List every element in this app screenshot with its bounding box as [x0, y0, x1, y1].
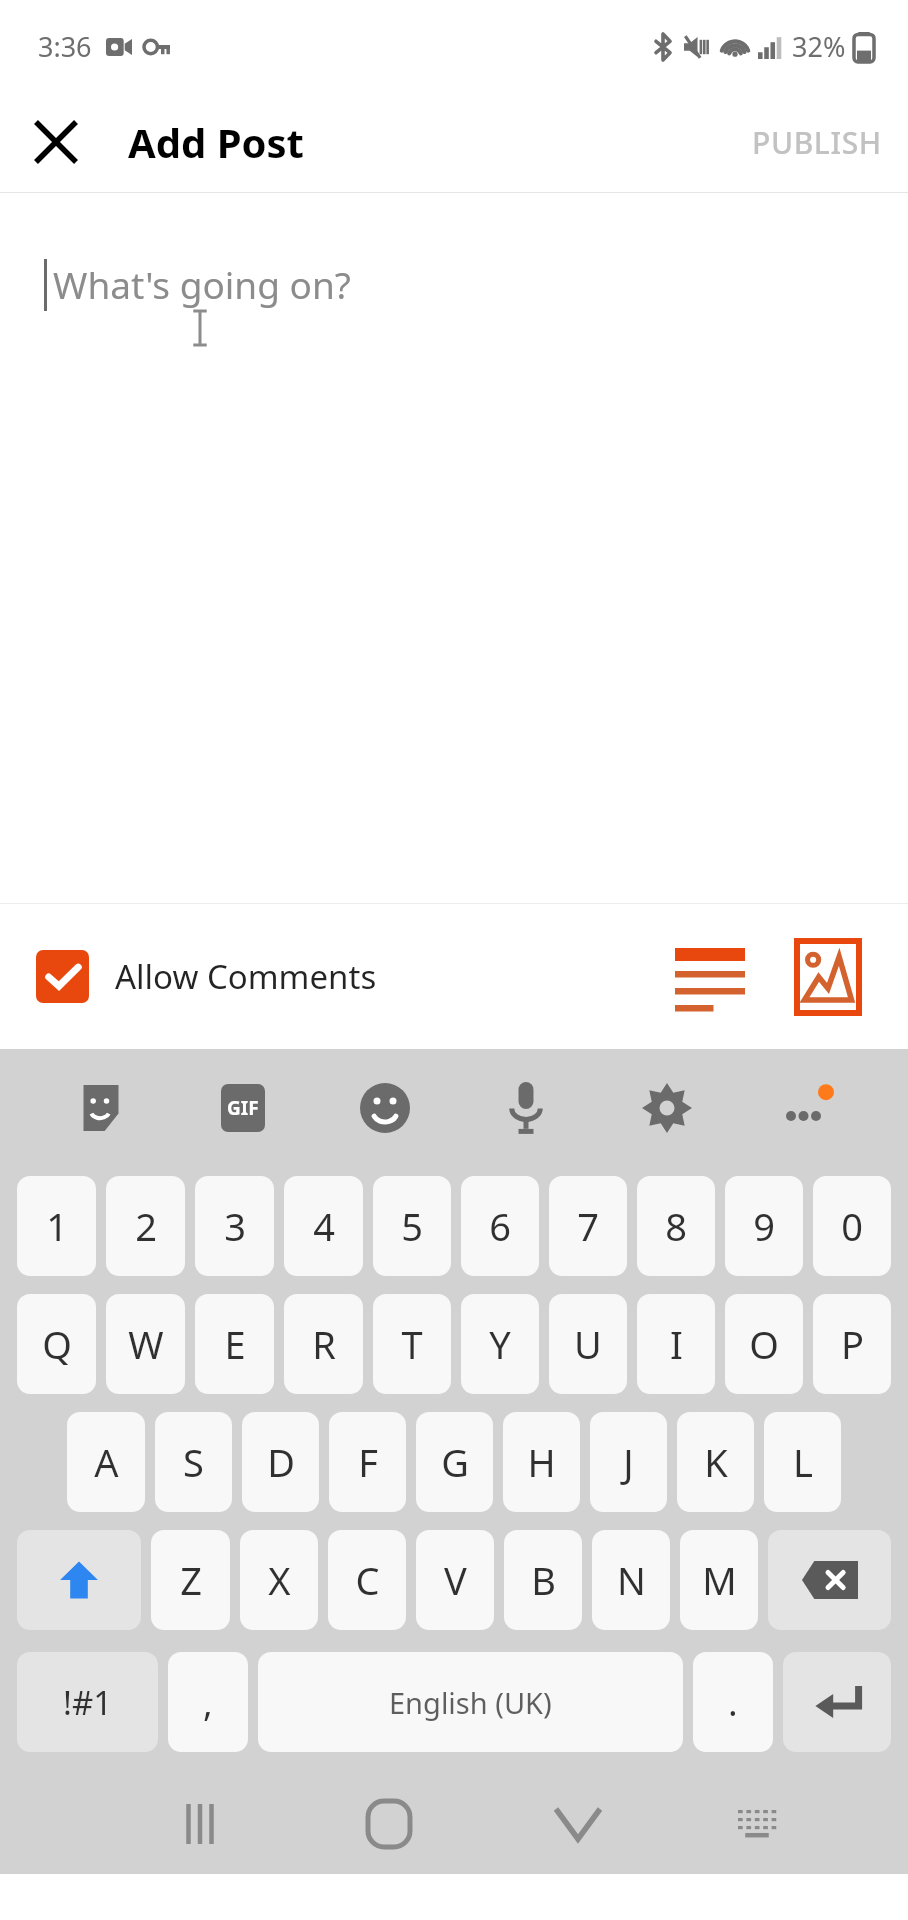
staticText: W — [128, 1318, 164, 1370]
staticText: Y — [489, 1318, 511, 1370]
button[interactable]: Y — [461, 1294, 539, 1394]
button[interactable]: 2 — [106, 1176, 185, 1276]
button[interactable]: C — [328, 1530, 406, 1630]
staticText: K — [704, 1436, 728, 1488]
button[interactable]: Space — [258, 1652, 683, 1752]
staticText: 0 — [841, 1200, 863, 1252]
staticText: J — [623, 1436, 634, 1488]
button[interactable]: 0 — [813, 1176, 891, 1276]
button[interactable]: Backspace — [768, 1530, 891, 1630]
button[interactable]: Recents — [105, 1774, 294, 1874]
button[interactable]: Home — [294, 1774, 483, 1874]
button[interactable]: M — [680, 1530, 758, 1630]
staticText: G — [441, 1436, 469, 1488]
button[interactable]: L — [764, 1412, 841, 1512]
staticText: Allow Comments — [115, 954, 377, 999]
staticText: A — [94, 1436, 119, 1488]
button[interactable]: R — [284, 1294, 363, 1394]
staticText: 3 — [224, 1200, 246, 1252]
button[interactable]: N — [592, 1530, 670, 1630]
staticText: F — [358, 1436, 378, 1488]
staticText: S — [183, 1436, 204, 1488]
staticText: H — [527, 1436, 556, 1488]
staticText: U — [574, 1318, 602, 1370]
button[interactable]: , — [168, 1652, 248, 1752]
button[interactable]: Shift — [17, 1530, 141, 1630]
button[interactable]: Allow Comments — [36, 950, 377, 1003]
button[interactable]: U — [549, 1294, 627, 1394]
button[interactable]: I — [637, 1294, 715, 1394]
button[interactable]: F — [329, 1412, 406, 1512]
button[interactable]: Add image — [784, 933, 872, 1021]
button[interactable]: V — [416, 1530, 494, 1630]
staticText: X — [268, 1554, 291, 1606]
staticText: D — [267, 1436, 295, 1488]
button[interactable]: 9 — [725, 1176, 803, 1276]
button[interactable]: H — [503, 1412, 580, 1512]
button[interactable]: 7 — [549, 1176, 627, 1276]
staticText: N — [617, 1554, 646, 1606]
button[interactable]: 6 — [461, 1176, 539, 1276]
staticText: What's going on? — [53, 259, 351, 309]
button[interactable]: O — [725, 1294, 803, 1394]
button[interactable]: J — [590, 1412, 667, 1512]
staticText: PUBLISH — [752, 122, 882, 163]
button[interactable]: 4 — [284, 1176, 363, 1276]
staticText: T — [401, 1318, 423, 1370]
staticText: E — [224, 1318, 246, 1370]
button[interactable]: What's going on? — [0, 193, 908, 903]
button[interactable]: sticker — [30, 1058, 172, 1158]
staticText: 32% — [792, 28, 846, 65]
button[interactable]: Q — [17, 1294, 96, 1394]
button[interactable]: 8 — [637, 1176, 715, 1276]
button[interactable]: Back — [483, 1774, 672, 1874]
staticText: 1 — [46, 1200, 68, 1252]
button[interactable]: B — [504, 1530, 582, 1630]
staticText: V — [444, 1554, 467, 1606]
staticText: 3:36 — [38, 28, 92, 65]
button[interactable]: emoji — [314, 1058, 455, 1158]
button[interactable]: PUBLISH — [726, 104, 908, 181]
staticText: L — [793, 1436, 813, 1488]
button[interactable]: Enter — [783, 1652, 891, 1752]
staticText: 8 — [665, 1200, 687, 1252]
button[interactable]: !#1 — [17, 1652, 158, 1752]
button[interactable]: settings — [596, 1058, 737, 1158]
button[interactable]: T — [373, 1294, 451, 1394]
staticText: 9 — [753, 1200, 775, 1252]
staticText: M — [702, 1554, 737, 1606]
button[interactable]: E — [195, 1294, 274, 1394]
button[interactable]: K — [677, 1412, 754, 1512]
button[interactable]: gif — [172, 1058, 314, 1158]
staticText: Q — [42, 1318, 72, 1370]
button[interactable]: Text formatting — [666, 933, 754, 1021]
button[interactable]: W — [106, 1294, 185, 1394]
staticText: 6 — [489, 1200, 511, 1252]
button[interactable]: mic — [455, 1058, 596, 1158]
button[interactable]: 3 — [195, 1176, 274, 1276]
button[interactable]: G — [416, 1412, 493, 1512]
staticText: , — [203, 1678, 213, 1727]
button[interactable]: S — [155, 1412, 232, 1512]
button[interactable]: . — [693, 1652, 773, 1752]
staticText: 2 — [135, 1200, 157, 1252]
staticText: Z — [180, 1554, 202, 1606]
button[interactable]: more — [737, 1058, 878, 1158]
staticText: R — [312, 1318, 336, 1370]
staticText: C — [355, 1554, 380, 1606]
button[interactable]: D — [242, 1412, 319, 1512]
button[interactable]: 1 — [17, 1176, 96, 1276]
button[interactable]: 5 — [373, 1176, 451, 1276]
staticText: !#1 — [63, 1680, 113, 1725]
button[interactable]: Z — [151, 1530, 230, 1630]
staticText: 5 — [401, 1200, 423, 1252]
button[interactable]: X — [240, 1530, 318, 1630]
staticText: English (UK) — [389, 1683, 552, 1722]
staticText: I — [670, 1318, 683, 1370]
staticText: Add Post — [128, 115, 304, 169]
staticText: GIF — [227, 1095, 259, 1121]
button[interactable]: A — [67, 1412, 145, 1512]
button[interactable]: P — [813, 1294, 891, 1394]
button[interactable]: Switch keyboard — [672, 1774, 842, 1874]
button[interactable]: Close — [22, 108, 90, 176]
